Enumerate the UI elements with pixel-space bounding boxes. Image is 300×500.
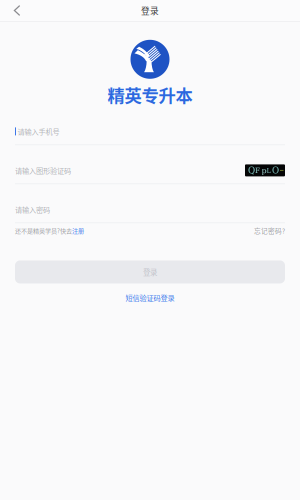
- staticText: 请输入密码: [15, 204, 50, 215]
- staticText: L: [266, 166, 270, 174]
- staticText: 短信验证码登录: [125, 292, 174, 303]
- staticText: 还不是精英学员?快去: [15, 226, 72, 235]
- staticText: 请输入手机号: [17, 126, 59, 137]
- staticText: p: [261, 166, 266, 175]
- staticText: 请输入图形验证码: [15, 165, 71, 176]
- staticText: 登录: [141, 4, 159, 17]
- button[interactable]: 登录: [0, 260, 300, 283]
- button[interactable]: Back: [0, 0, 34, 21]
- staticText: 忘记密码?: [254, 226, 285, 235]
- button[interactable]: 忘记密码?: [254, 226, 285, 235]
- staticText: 登录: [143, 266, 157, 277]
- staticText: Q: [248, 165, 255, 175]
- staticText: 精英专升本: [107, 82, 192, 107]
- staticText: 注册: [72, 226, 84, 235]
- button[interactable]: 短信验证码登录: [125, 292, 174, 303]
- staticText: F: [255, 166, 260, 175]
- button[interactable]: 还不是精英学员?快去: [15, 226, 84, 235]
- staticText: O: [272, 165, 279, 175]
